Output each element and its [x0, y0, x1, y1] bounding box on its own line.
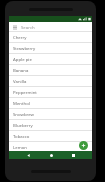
button[interactable]: Recent apps — [69, 151, 77, 159]
staticText: Search — [21, 24, 35, 30]
button[interactable]: Banana — [9, 65, 92, 75]
staticText: Menthol — [13, 100, 30, 106]
button[interactable]: Menthol — [9, 98, 92, 108]
button[interactable]: Apple pie — [9, 54, 92, 64]
button[interactable]: Home — [47, 151, 55, 159]
staticText: Banana — [13, 67, 29, 73]
button[interactable]: Blueberry — [9, 120, 92, 130]
button[interactable]: Snowbrew — [9, 109, 92, 119]
button[interactable]: Vanilla — [9, 76, 92, 86]
staticText: Lemon — [13, 144, 27, 150]
staticText: Cherry — [13, 34, 27, 40]
button[interactable]: Strawberry — [9, 43, 92, 53]
button[interactable]: Open navigation menu — [9, 22, 92, 31]
button[interactable]: Open navigation menu — [12, 24, 18, 30]
button[interactable]: Cherry — [9, 32, 92, 42]
staticText: Apple pie — [13, 56, 32, 62]
button[interactable]: Lemon — [9, 142, 92, 151]
button[interactable]: Add flavour — [79, 141, 88, 150]
staticText: Blueberry — [13, 122, 33, 128]
staticText: Snowbrew — [13, 111, 34, 117]
staticText: Peppermint — [13, 89, 37, 95]
button[interactable]: Back — [24, 151, 32, 159]
staticText: Strawberry — [13, 45, 36, 51]
button[interactable]: Peppermint — [9, 87, 92, 97]
staticText: Tobacco — [13, 133, 30, 139]
button[interactable]: Tobacco — [9, 131, 92, 141]
staticText: Vanilla — [13, 78, 27, 84]
